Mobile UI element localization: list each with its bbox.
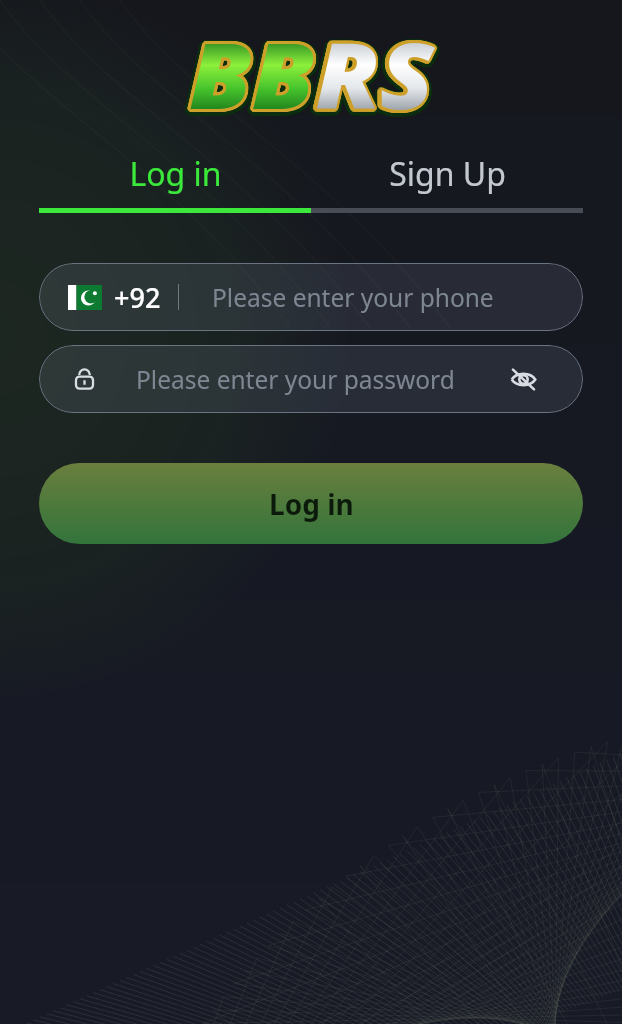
button[interactable]: +92 — [39, 263, 583, 331]
staticText: Sign Up — [389, 152, 506, 196]
button[interactable]: Sign Up — [311, 152, 583, 213]
other: Password — [73, 366, 96, 392]
staticText: Log in — [129, 152, 222, 196]
staticText: +92 — [114, 279, 161, 316]
button[interactable]: Log in — [39, 152, 311, 213]
staticText: Please enter your phone — [212, 281, 494, 314]
staticText: Please enter your password — [136, 363, 455, 396]
button[interactable]: Password — [39, 345, 583, 413]
button[interactable]: Log in — [39, 463, 583, 544]
staticText: Log in — [269, 485, 354, 523]
button[interactable]: Show password — [505, 361, 541, 397]
